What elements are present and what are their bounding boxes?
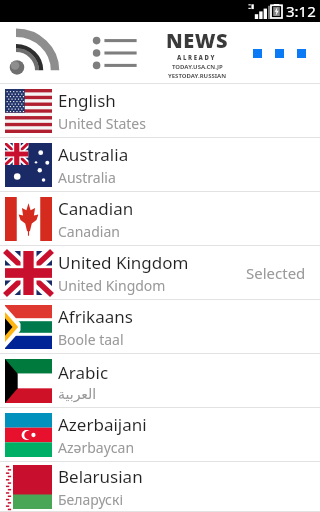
staticText: Belarusian xyxy=(58,465,143,488)
button[interactable]: Belarusian xyxy=(0,462,320,512)
staticText: NEWS xyxy=(166,27,228,54)
button[interactable]: Feed xyxy=(6,29,56,77)
button[interactable]: Canadian xyxy=(0,192,320,246)
staticText: United Kingdom xyxy=(58,276,166,295)
staticText: Australia xyxy=(58,143,129,166)
staticText: United States xyxy=(58,114,146,133)
button[interactable]: NEWS xyxy=(166,27,228,80)
staticText: 3:12 xyxy=(286,1,316,21)
staticText: Selected xyxy=(246,263,306,283)
button[interactable]: Australia xyxy=(0,138,320,192)
button[interactable]: English xyxy=(0,84,320,138)
staticText: Беларускі xyxy=(58,490,124,509)
staticText: ALREADY xyxy=(177,54,217,62)
staticText: Afrikaans xyxy=(58,305,133,328)
staticText: Arabic xyxy=(58,361,109,384)
button[interactable]: More options xyxy=(247,39,312,68)
button[interactable]: List xyxy=(92,33,138,73)
staticText: YESTODAY.RUSSIAN xyxy=(168,72,227,80)
button[interactable]: Arabic xyxy=(0,354,320,408)
staticText: العربية xyxy=(58,386,97,402)
staticText: TODAY.USA.CN.JP xyxy=(172,63,223,71)
button[interactable]: United Kingdom xyxy=(0,246,320,300)
button[interactable]: Azerbaijani xyxy=(0,408,320,462)
staticText: Boole taal xyxy=(58,330,124,349)
staticText: Azərbaycan xyxy=(58,438,135,457)
staticText: Azerbaijani xyxy=(58,413,147,436)
staticText: English xyxy=(58,89,116,112)
button[interactable]: Afrikaans xyxy=(0,300,320,354)
staticText: Canadian xyxy=(58,222,120,241)
staticText: United Kingdom xyxy=(58,251,189,274)
staticText: Australia xyxy=(58,168,116,187)
staticText: Canadian xyxy=(58,197,134,220)
